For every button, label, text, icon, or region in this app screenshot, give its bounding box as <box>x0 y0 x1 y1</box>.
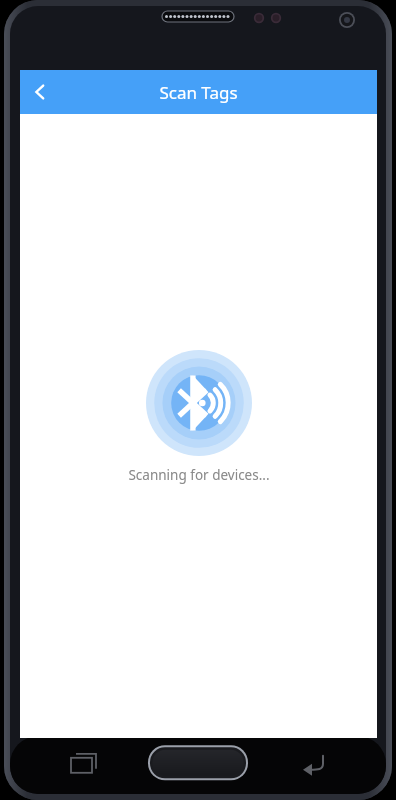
button[interactable]: Scanning for Bluetooth devices <box>146 350 252 456</box>
button[interactable]: Back <box>20 70 64 114</box>
staticText: Scan Tags <box>159 81 238 104</box>
staticText: Scanning for devices... <box>128 466 270 484</box>
